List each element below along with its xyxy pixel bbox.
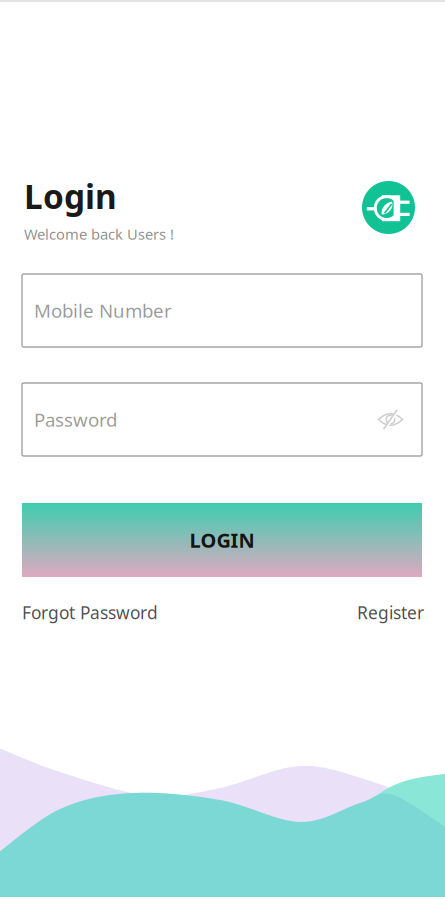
button[interactable]: Register — [357, 601, 424, 624]
button[interactable]: LOGIN — [22, 503, 422, 577]
staticText: Register — [357, 601, 424, 624]
button[interactable]: Show password — [377, 409, 403, 429]
staticText: Welcome back Users ! — [24, 224, 174, 244]
staticText: Login — [24, 174, 117, 218]
staticText: Forgot Password — [22, 601, 158, 624]
staticText: Mobile Number — [34, 298, 172, 323]
staticText: Password — [34, 407, 117, 432]
staticText: LOGIN — [189, 527, 254, 553]
button[interactable]: Forgot Password — [22, 601, 158, 624]
